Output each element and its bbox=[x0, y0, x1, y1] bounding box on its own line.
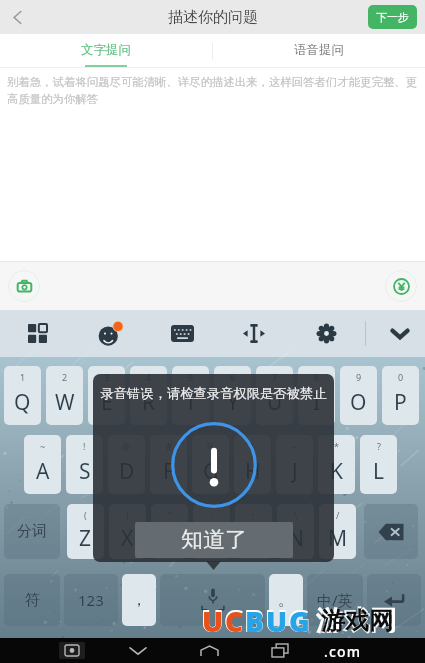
button[interactable]: Switch keyboard bbox=[159, 310, 205, 357]
button[interactable]: # bbox=[150, 435, 187, 494]
staticText: 3 bbox=[104, 371, 110, 383]
staticText: 录音错误，请检查录音权限是否被禁止 bbox=[100, 385, 327, 402]
staticText: 123 bbox=[78, 590, 104, 610]
button[interactable]: Recent apps bbox=[265, 638, 295, 663]
staticText: C bbox=[225, 602, 244, 640]
staticText: 符 bbox=[25, 591, 40, 610]
staticText: 5 bbox=[188, 371, 194, 383]
staticText: 文字提问 bbox=[81, 42, 131, 58]
staticText: % bbox=[207, 440, 215, 452]
button[interactable]: ) bbox=[109, 504, 146, 559]
button[interactable]: 7 bbox=[256, 366, 293, 425]
staticText: 4 bbox=[146, 371, 152, 383]
button[interactable]: \ bbox=[277, 504, 314, 559]
button[interactable]: 6 bbox=[214, 366, 251, 425]
button[interactable]: Emoji bbox=[87, 310, 133, 357]
staticText: I bbox=[313, 388, 321, 417]
button[interactable]: ， bbox=[122, 574, 156, 626]
button[interactable]: 下一步 bbox=[368, 5, 417, 29]
staticText: # bbox=[166, 440, 172, 452]
staticText: N bbox=[288, 524, 304, 553]
button[interactable]: * bbox=[318, 435, 355, 494]
staticText: O bbox=[350, 388, 367, 417]
button[interactable]: 知道了 bbox=[135, 522, 293, 558]
button[interactable]: : bbox=[193, 504, 230, 559]
button[interactable]: ! bbox=[66, 435, 103, 494]
button[interactable]: Screenshot bbox=[57, 638, 87, 663]
staticText: 语音提问 bbox=[294, 42, 344, 58]
button[interactable]: / bbox=[319, 504, 356, 559]
button[interactable]: Home bbox=[194, 638, 224, 663]
button[interactable]: Space / voice input bbox=[160, 574, 265, 626]
staticText: U bbox=[201, 600, 224, 641]
staticText: ~ bbox=[40, 440, 46, 452]
button[interactable]: Set reward bbox=[385, 270, 417, 302]
button[interactable]: 0 bbox=[382, 366, 419, 425]
button[interactable]: 1 bbox=[4, 366, 41, 425]
button[interactable]: ( bbox=[67, 504, 104, 559]
staticText: G bbox=[203, 457, 219, 486]
staticText: U bbox=[266, 602, 288, 640]
button[interactable]: 。 bbox=[269, 574, 303, 626]
staticText: * bbox=[334, 440, 339, 452]
button[interactable]: Settings bbox=[303, 310, 349, 357]
button[interactable]: @ bbox=[108, 435, 145, 494]
staticText: U bbox=[267, 388, 283, 417]
button[interactable]: 5 bbox=[172, 366, 209, 425]
button[interactable]: Add photo bbox=[8, 270, 40, 302]
staticText: 描述你的问题 bbox=[168, 8, 258, 27]
staticText: D bbox=[119, 457, 135, 486]
staticText: M bbox=[328, 524, 348, 553]
staticText: 别着急，试着将问题尽可能清晰、详尽的描述出来，这样回答者们才能更完整、更高质量的… bbox=[7, 75, 418, 106]
button[interactable]: 文字提问 bbox=[0, 34, 212, 68]
staticText: 下一步 bbox=[376, 10, 409, 24]
button[interactable]: & bbox=[234, 435, 271, 494]
staticText: B bbox=[245, 602, 264, 640]
button[interactable]: 中/英 bbox=[307, 574, 363, 626]
button[interactable]: 符 bbox=[4, 574, 60, 626]
button[interactable]: Back bbox=[0, 0, 34, 34]
staticText: B bbox=[244, 600, 265, 641]
button[interactable]: 分词 bbox=[4, 504, 60, 559]
staticText: R bbox=[142, 388, 156, 417]
button[interactable]: Enter bbox=[367, 574, 421, 626]
staticText: ! bbox=[83, 440, 86, 452]
button[interactable]: ; bbox=[235, 504, 272, 559]
staticText: G bbox=[289, 602, 310, 640]
button[interactable]: 8 bbox=[298, 366, 335, 425]
button[interactable]: 9 bbox=[340, 366, 377, 425]
button[interactable]: 123 bbox=[64, 574, 118, 626]
staticText: @ bbox=[122, 440, 131, 452]
staticText: T bbox=[185, 388, 197, 417]
button[interactable]: Hide keyboard bbox=[377, 310, 423, 357]
staticText: 7 bbox=[272, 371, 278, 383]
button[interactable]: ? bbox=[360, 435, 397, 494]
staticText: H bbox=[245, 457, 261, 486]
staticText: A bbox=[36, 457, 50, 486]
staticText: ， bbox=[131, 590, 147, 610]
button[interactable]: Keyboard layouts bbox=[14, 310, 60, 357]
button[interactable]: 2 bbox=[46, 366, 83, 425]
staticText: J bbox=[292, 457, 298, 486]
button[interactable]: 3 bbox=[88, 366, 125, 425]
staticText: 2 bbox=[62, 371, 68, 383]
staticText: 游戏网 bbox=[316, 604, 397, 638]
staticText: 8 bbox=[314, 371, 320, 383]
button[interactable]: 语音提问 bbox=[212, 34, 425, 68]
button[interactable]: 4 bbox=[130, 366, 167, 425]
staticText: C bbox=[224, 600, 244, 641]
staticText: U bbox=[265, 600, 288, 641]
button[interactable]: Backspace bbox=[364, 504, 418, 559]
button[interactable]: Back bbox=[123, 638, 153, 663]
button[interactable]: Move cursor bbox=[231, 310, 277, 357]
staticText: W bbox=[55, 388, 75, 417]
button[interactable]: " bbox=[151, 504, 188, 559]
button[interactable]: ~ bbox=[24, 435, 61, 494]
button[interactable]: % bbox=[192, 435, 229, 494]
staticText: / bbox=[336, 509, 340, 521]
staticText: K bbox=[330, 457, 343, 486]
